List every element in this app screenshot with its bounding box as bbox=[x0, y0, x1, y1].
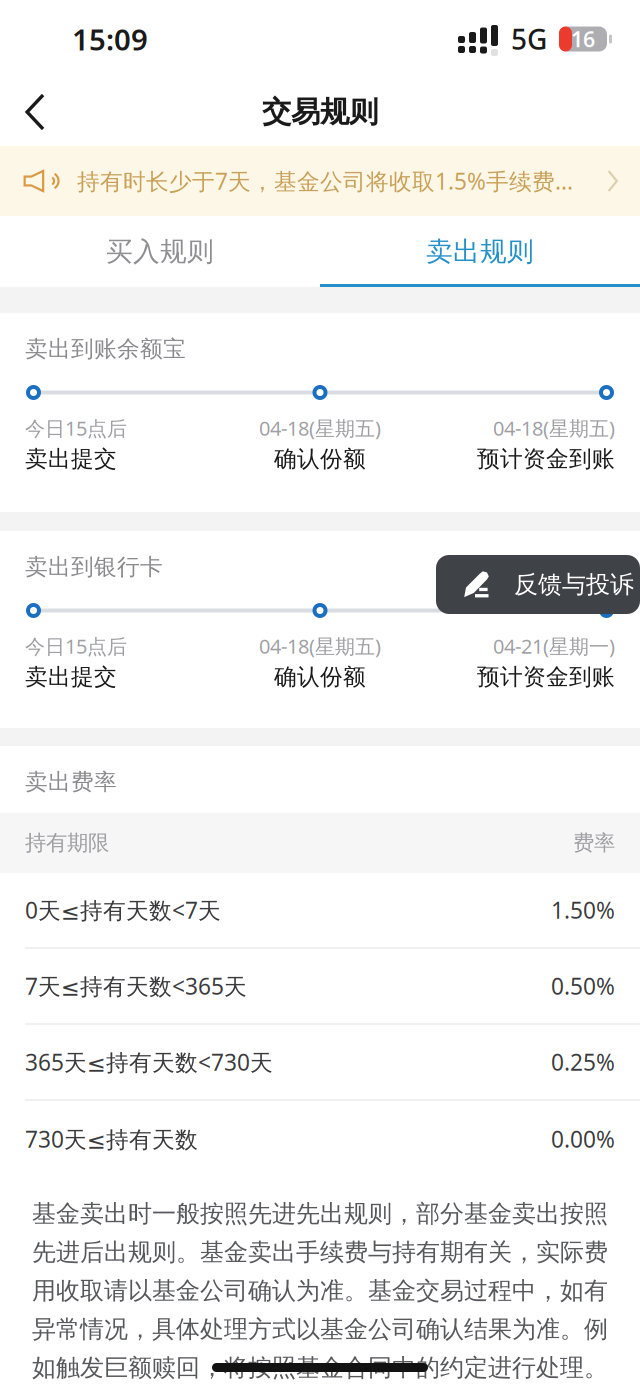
staticText: 交易规则 bbox=[262, 94, 378, 130]
staticText: 730天≤持有天数 bbox=[25, 1124, 198, 1154]
staticText: 5G bbox=[511, 20, 547, 58]
staticText: 买入规则 bbox=[106, 235, 214, 268]
staticText: 反馈与投诉 bbox=[514, 570, 634, 599]
staticText: 卖出提交 bbox=[25, 445, 117, 473]
staticText: 0.00% bbox=[551, 1124, 615, 1154]
staticText: 今日15点后 bbox=[25, 633, 127, 659]
staticText: 0.25% bbox=[551, 1047, 615, 1077]
staticText: 卖出提交 bbox=[25, 663, 117, 691]
staticText: 1.50% bbox=[551, 895, 615, 925]
button[interactable]: 持有时长少于7天，基金公司将收取1.5%手续费... bbox=[0, 146, 640, 216]
staticText: 卖出到银行卡 bbox=[25, 553, 163, 581]
staticText: 04-18(星期五) bbox=[259, 415, 381, 441]
button[interactable]: Back bbox=[0, 78, 72, 146]
button[interactable]: 反馈与投诉 bbox=[436, 555, 640, 614]
staticText: 16 bbox=[571, 25, 595, 53]
staticText: 15:09 bbox=[72, 19, 148, 58]
staticText: 今日15点后 bbox=[25, 415, 127, 441]
staticText: 卖出到账余额宝 bbox=[25, 335, 186, 363]
staticText: 04-21(星期一) bbox=[493, 633, 615, 659]
staticText: 卖出规则 bbox=[426, 235, 534, 268]
staticText: 04-18(星期五) bbox=[259, 633, 381, 659]
staticText: 预计资金到账 bbox=[477, 445, 615, 473]
staticText: 0.50% bbox=[551, 971, 615, 1001]
staticText: 确认份额 bbox=[274, 663, 366, 691]
staticText: 持有期限 bbox=[25, 830, 109, 856]
staticText: 确认份额 bbox=[274, 445, 366, 473]
staticText: 04-18(星期五) bbox=[493, 415, 615, 441]
staticText: 卖出费率 bbox=[25, 768, 117, 796]
staticText: 持有时长少于7天，基金公司将收取1.5%手续费... bbox=[77, 166, 573, 196]
staticText: 预计资金到账 bbox=[477, 663, 615, 691]
staticText: 费率 bbox=[573, 830, 615, 856]
staticText: 7天≤持有天数<365天 bbox=[25, 971, 247, 1001]
button[interactable]: 卖出规则 bbox=[320, 216, 640, 287]
staticText: 0天≤持有天数<7天 bbox=[25, 895, 221, 925]
staticText: 365天≤持有天数<730天 bbox=[25, 1047, 273, 1077]
staticText: 基金卖出时一般按照先进先出规则，部分基金卖出按照先进后出规则。基金卖出手续费与持… bbox=[32, 1199, 608, 1385]
button[interactable]: 买入规则 bbox=[0, 216, 320, 287]
